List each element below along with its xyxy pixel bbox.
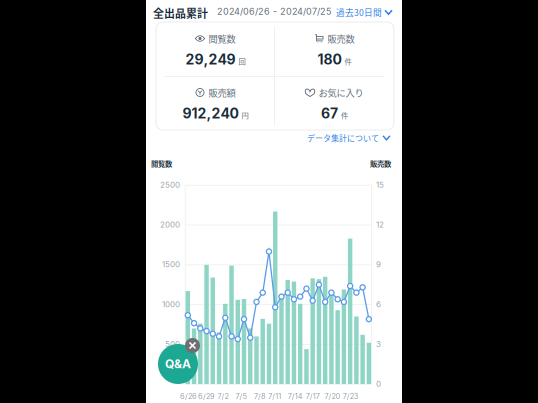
staticText: 9 (376, 260, 381, 269)
staticText: 円 (241, 110, 248, 120)
staticText: 1000 (162, 299, 180, 309)
button[interactable]: 過去30日間 (336, 6, 392, 18)
staticText: 件 (341, 110, 348, 120)
button[interactable]: Q&A (158, 344, 198, 384)
staticText: 7/8 (254, 392, 266, 401)
staticText: 12 (376, 220, 384, 229)
staticText: 全出品累計 (153, 5, 208, 21)
staticText: 販売数 (370, 158, 391, 169)
button[interactable]: 閉じる (185, 338, 200, 353)
staticText: 15 (376, 180, 384, 190)
staticText: 7/23 (343, 392, 359, 401)
staticText: 件 (344, 56, 351, 66)
staticText: 7/5 (236, 392, 247, 401)
staticText: お気に入り (318, 86, 363, 99)
staticText: データ集計について (307, 132, 379, 144)
staticText: 7/17 (306, 392, 320, 401)
staticText: 180 (317, 51, 341, 68)
staticText: 1500 (162, 260, 180, 269)
staticText: 販売数 (327, 32, 354, 45)
staticText: 2024/06/26 - 2024/07/25 (217, 6, 332, 17)
staticText: 7/20 (325, 392, 341, 401)
staticText: 2500 (160, 180, 180, 190)
staticText: 6 (376, 299, 381, 309)
staticText: 閲覧数 (151, 158, 172, 169)
staticText: 販売額 (208, 86, 235, 99)
staticText: 29,249 (185, 51, 235, 68)
button[interactable]: データ集計について (307, 132, 390, 144)
staticText: 閲覧数 (208, 32, 235, 45)
staticText: 7/14 (288, 392, 303, 401)
staticText: 2000 (160, 220, 180, 229)
staticText: 7/11 (268, 392, 281, 401)
staticText: 7/2 (218, 392, 229, 401)
staticText: 0 (376, 379, 381, 389)
staticText: 912,240 (182, 105, 238, 122)
staticText: Q&A (165, 357, 191, 371)
staticText: 過去30日間 (336, 6, 382, 18)
staticText: 6/29 (198, 392, 215, 401)
staticText: 6/26 (180, 392, 197, 401)
staticText: 67 (321, 105, 338, 122)
staticText: 500 (165, 339, 180, 349)
staticText: 3 (376, 339, 381, 349)
staticText: 回 (238, 56, 245, 66)
